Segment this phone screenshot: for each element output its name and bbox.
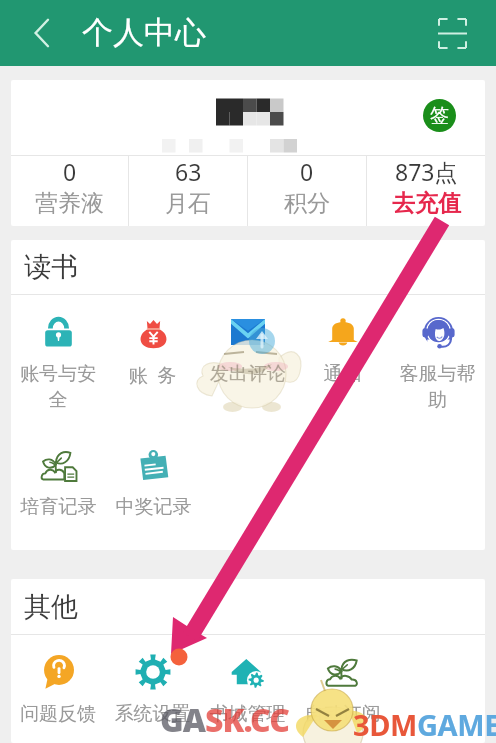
button[interactable]: 自动订阅 — [295, 651, 390, 723]
staticText: 发出评论 — [210, 362, 286, 386]
staticText: SK.CC — [205, 698, 289, 742]
staticText: 培育记录 — [14, 495, 103, 519]
staticText: 中奖记录 — [109, 495, 198, 519]
staticText: 63 — [175, 156, 202, 187]
staticText: GA — [160, 698, 205, 742]
button[interactable]: 发出评论 — [200, 311, 295, 386]
staticText: 问题反馈 — [14, 702, 102, 723]
staticText: 自动订阅 — [298, 702, 387, 723]
button[interactable]: 签到 — [423, 99, 456, 132]
button[interactable]: 培育记录 — [11, 444, 106, 519]
staticText: 通知 — [298, 362, 387, 386]
button[interactable]: 0 — [11, 156, 128, 218]
button[interactable]: 系统设置 — [105, 651, 200, 723]
staticText: 客服与帮助 — [393, 362, 482, 412]
button[interactable]: 客服与帮助 — [390, 311, 485, 412]
button[interactable]: 签到 — [11, 80, 485, 155]
staticText: 873点 — [395, 156, 458, 187]
button[interactable]: 通知 — [295, 311, 390, 386]
staticText: 去充值 — [392, 189, 461, 218]
staticText: 书城管理 — [203, 702, 292, 723]
staticText: 个人中心 — [82, 13, 206, 52]
button[interactable]: 账号与安全 — [11, 311, 105, 412]
staticText: GAME — [417, 705, 496, 743]
button[interactable]: 中奖记录 — [106, 444, 201, 519]
button[interactable]: 问题反馈 — [11, 651, 105, 723]
button[interactable]: 书城管理 — [200, 651, 295, 723]
staticText: 系统设置 — [108, 702, 197, 723]
staticText: 3DM — [353, 705, 417, 743]
button[interactable]: Scan — [430, 11, 474, 55]
staticText: 账号与安全 — [14, 362, 102, 412]
staticText: 读书 — [24, 250, 78, 284]
staticText: 发出评论 — [203, 362, 292, 386]
button[interactable]: Back — [20, 11, 64, 55]
staticText: 营养液 — [35, 189, 104, 218]
staticText: 积分 — [284, 189, 330, 218]
button[interactable]: 0 — [248, 156, 366, 218]
staticText: 0 — [300, 156, 314, 187]
button[interactable]: 873点 — [367, 156, 485, 218]
staticText: 0 — [63, 156, 77, 187]
staticText: 月石 — [165, 189, 211, 218]
staticText: 签 — [430, 104, 449, 128]
button[interactable]: 账 务 — [105, 311, 200, 388]
staticText: 其他 — [24, 590, 78, 624]
staticText: 账 务 — [108, 362, 197, 388]
button[interactable]: 63 — [129, 156, 247, 218]
